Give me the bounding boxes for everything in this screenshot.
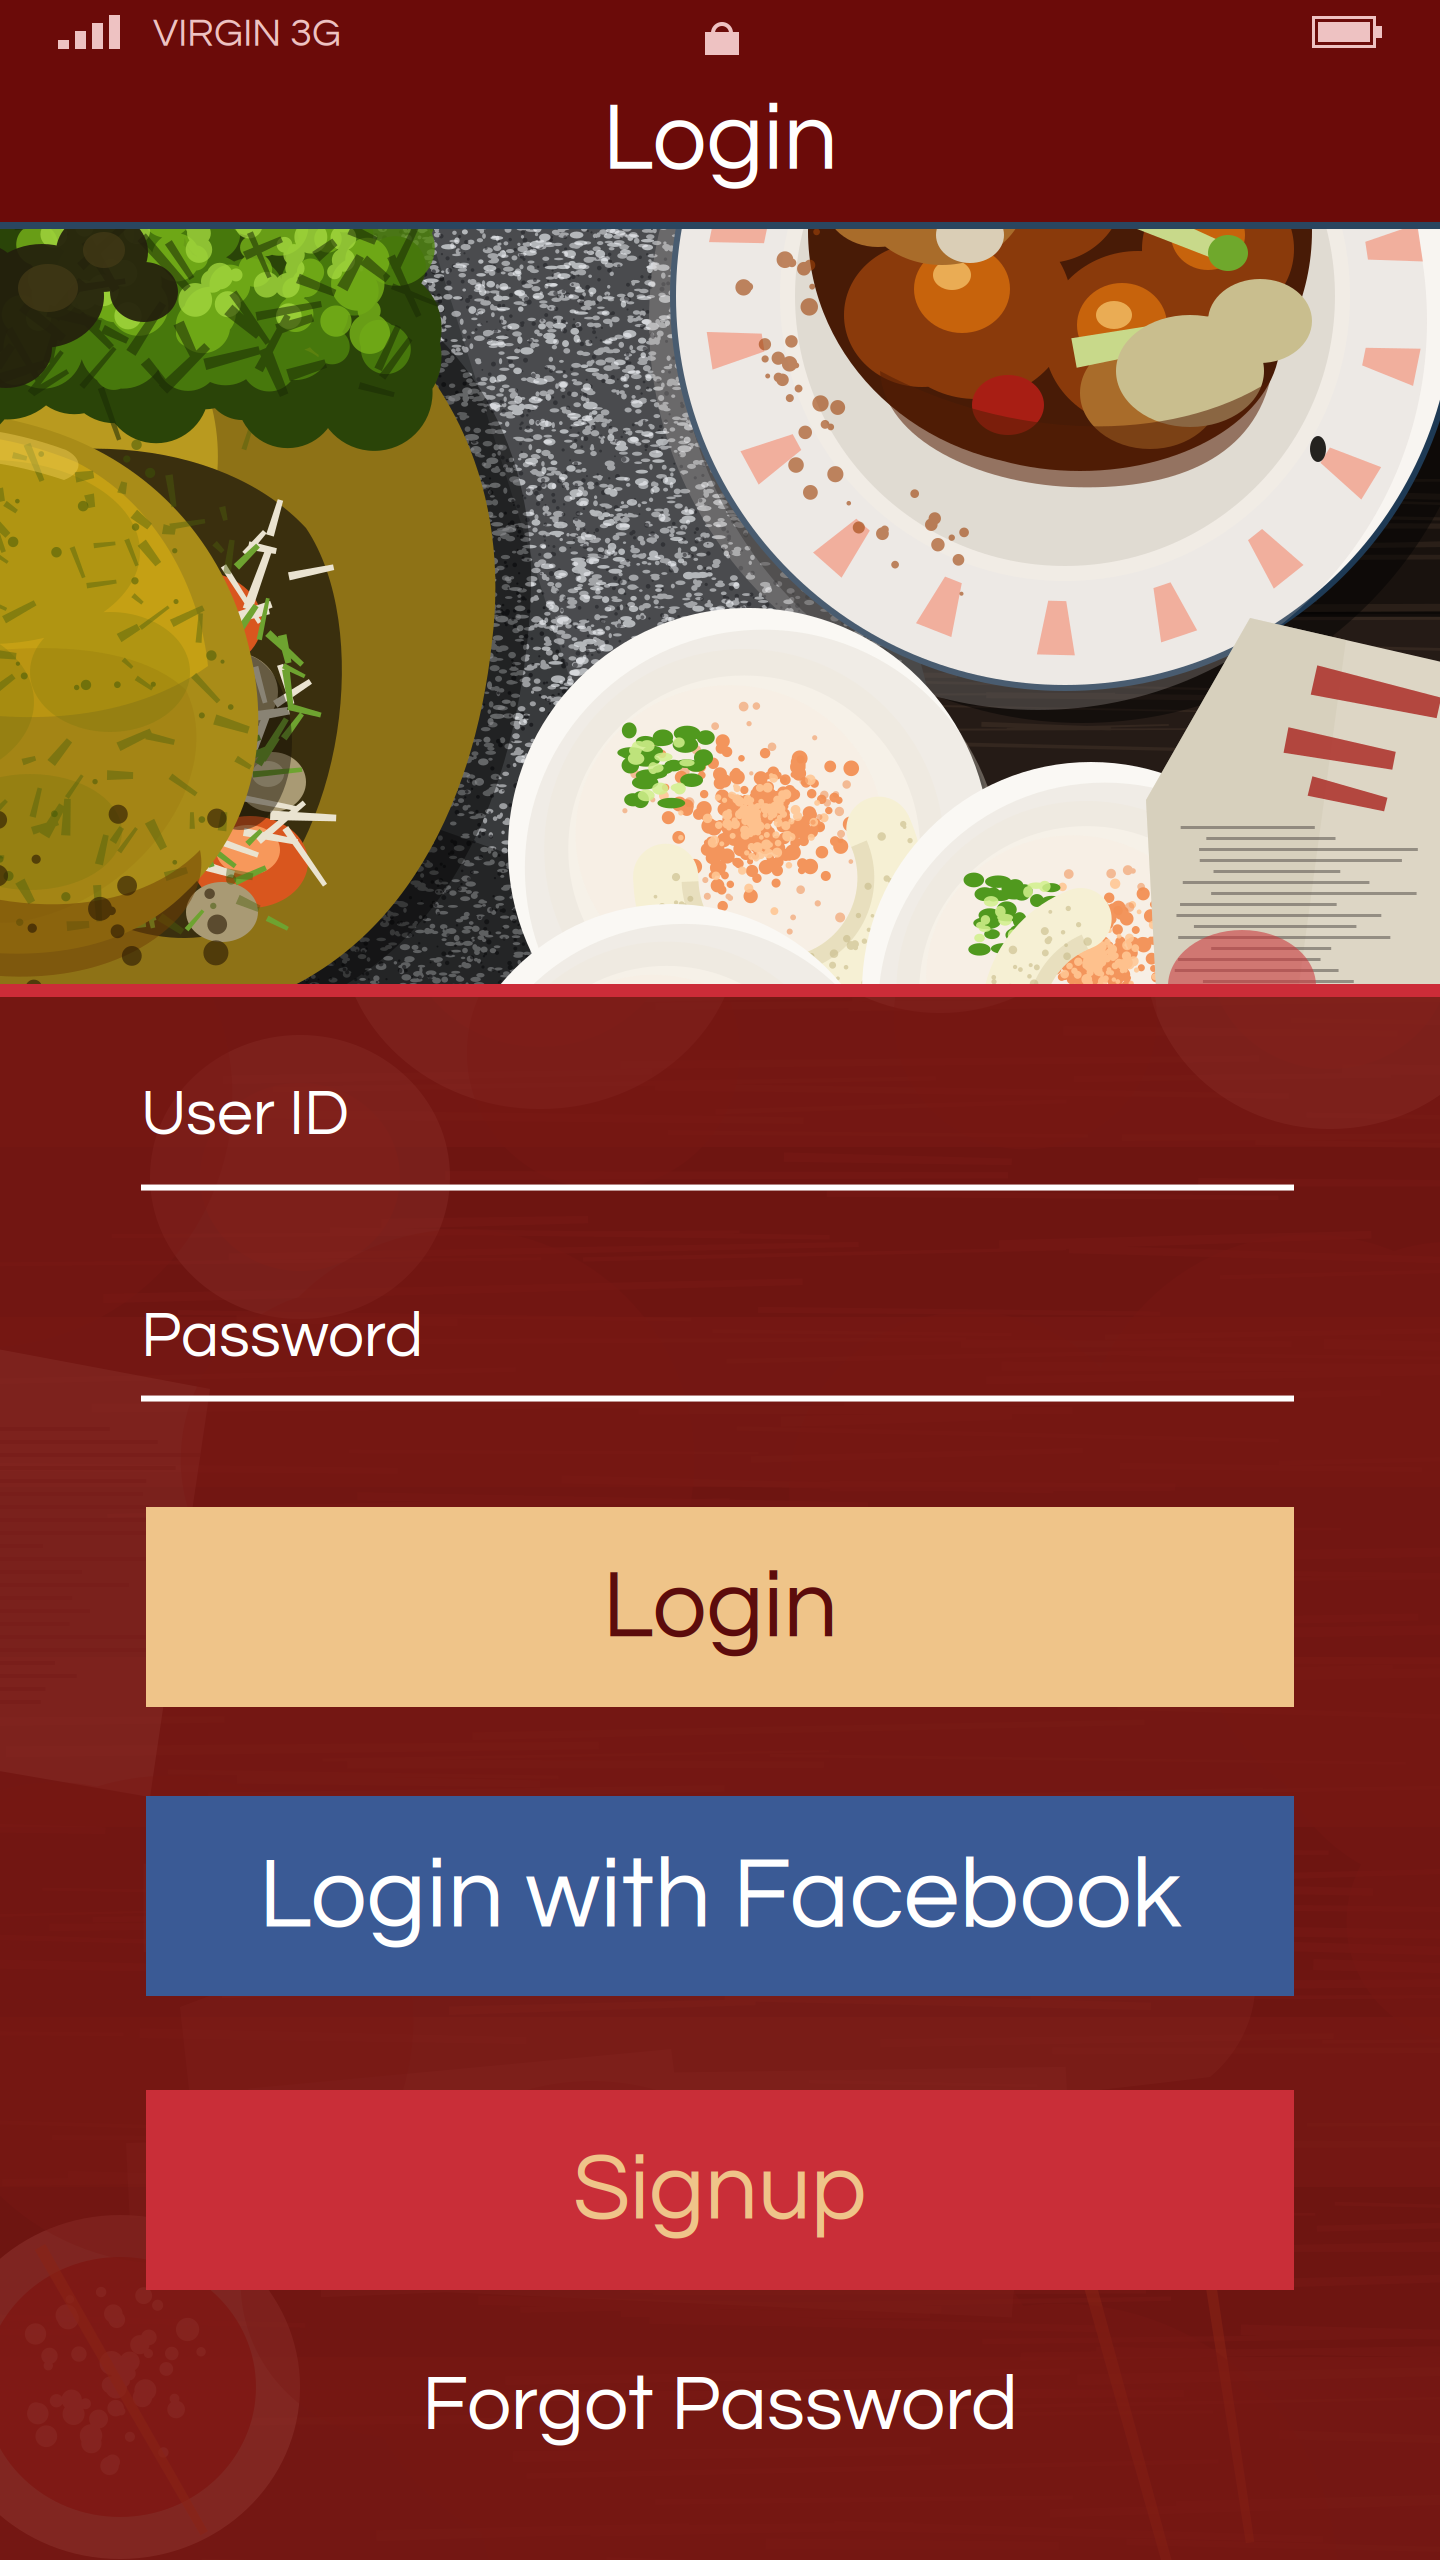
staticText: Signup	[573, 2142, 867, 2238]
button[interactable]: Login with Facebook	[146, 1796, 1294, 1996]
staticText: Login	[602, 90, 837, 189]
button[interactable]: Login	[146, 1507, 1294, 1707]
staticText: User ID	[141, 1081, 349, 1147]
staticText: Login with Facebook	[258, 1844, 1181, 1947]
staticText: Forgot Password	[422, 2364, 1018, 2445]
button[interactable]: Forgot Password	[0, 2349, 1440, 2461]
button[interactable]: Signup	[146, 2090, 1294, 2290]
staticText: Login	[602, 1558, 837, 1656]
staticText: VIRGIN 3G	[153, 13, 341, 54]
staticText: Password	[141, 1303, 423, 1369]
